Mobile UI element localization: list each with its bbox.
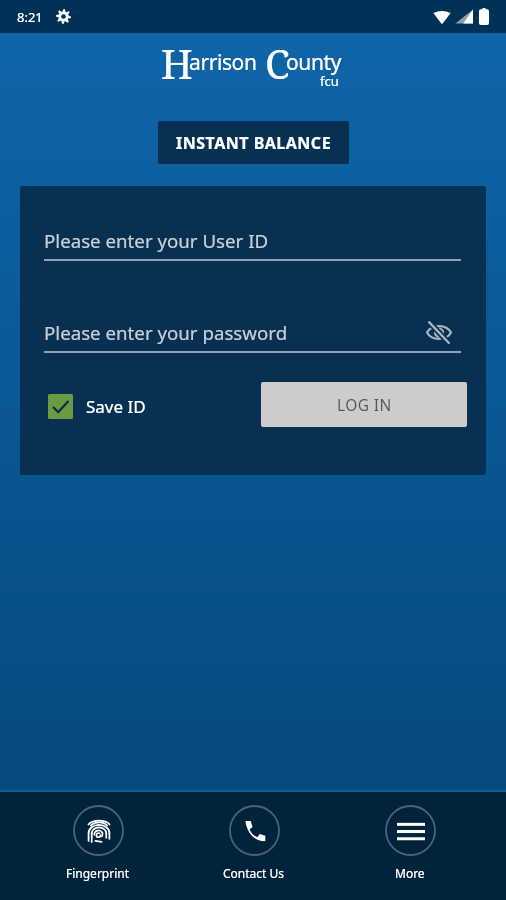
button[interactable]: Please enter your password xyxy=(44,319,461,353)
staticText: H xyxy=(161,36,193,82)
button[interactable]: Show password xyxy=(424,319,454,345)
staticText: INSTANT BALANCE xyxy=(176,132,332,154)
button[interactable]: Save ID xyxy=(44,392,142,417)
staticText: LOG IN xyxy=(337,394,392,415)
staticText: More xyxy=(395,865,425,881)
button[interactable]: Please enter your User ID xyxy=(44,228,461,261)
button[interactable]: More xyxy=(365,792,455,900)
staticText: Contact Us xyxy=(223,865,285,881)
staticText: Please enter your User ID xyxy=(44,228,269,253)
staticText: C xyxy=(265,36,290,82)
staticText: Please enter your password xyxy=(44,320,288,345)
other: Show password xyxy=(424,319,454,345)
other: Fingerprint xyxy=(86,818,112,844)
staticText: Save ID xyxy=(86,395,146,418)
button[interactable]: Fingerprint xyxy=(53,792,143,900)
button[interactable]: Contact Us xyxy=(209,792,299,900)
other: Contact Us xyxy=(243,819,267,843)
button[interactable]: LOG IN xyxy=(261,382,467,427)
staticText: 8:21 xyxy=(17,8,43,26)
staticText: ounty xyxy=(286,48,341,77)
staticText: arrison xyxy=(189,48,257,77)
other: More xyxy=(397,819,425,843)
staticText: Fingerprint xyxy=(66,865,130,881)
button[interactable]: INSTANT BALANCE xyxy=(158,121,349,164)
staticText: fcu xyxy=(320,72,339,90)
